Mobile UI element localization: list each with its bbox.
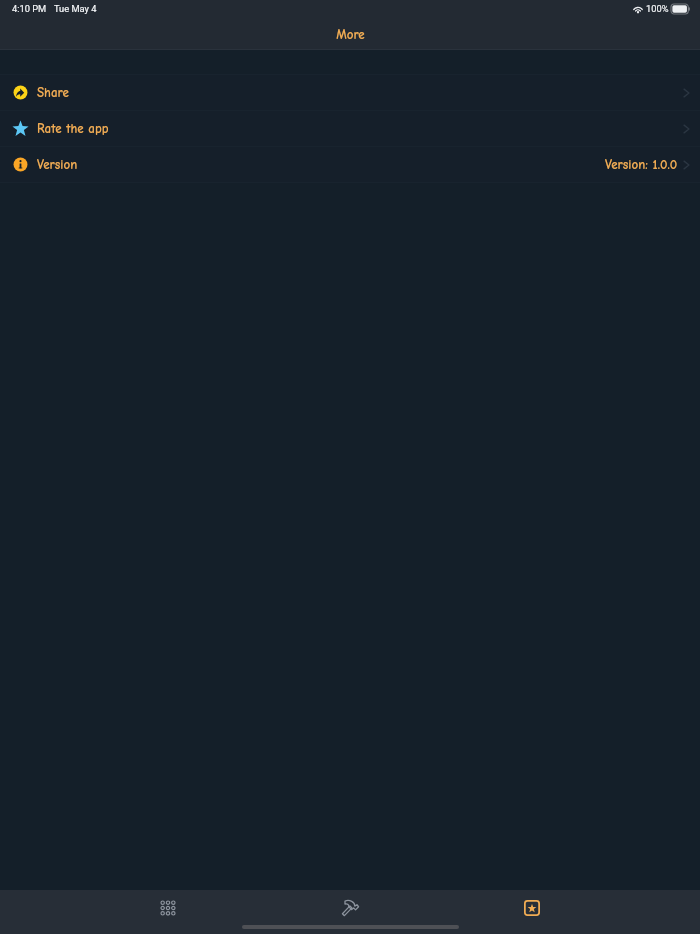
staticText: Version: 1.0.0 <box>605 157 678 172</box>
button[interactable]: Tools <box>259 890 441 925</box>
staticText: Version <box>37 157 78 172</box>
staticText: Rate the app <box>37 121 109 136</box>
staticText: Tue May 4 <box>54 3 97 14</box>
button[interactable]: More <box>441 890 623 925</box>
staticText: Share <box>37 85 69 100</box>
button[interactable]: Rate the app <box>0 111 700 146</box>
staticText: More <box>336 27 365 42</box>
button[interactable]: Share <box>0 75 700 110</box>
staticText: 100% <box>646 3 669 14</box>
staticText: 4:10 PM <box>12 3 47 14</box>
button[interactable]: Version <box>0 147 700 182</box>
button[interactable]: Apps <box>77 890 259 925</box>
